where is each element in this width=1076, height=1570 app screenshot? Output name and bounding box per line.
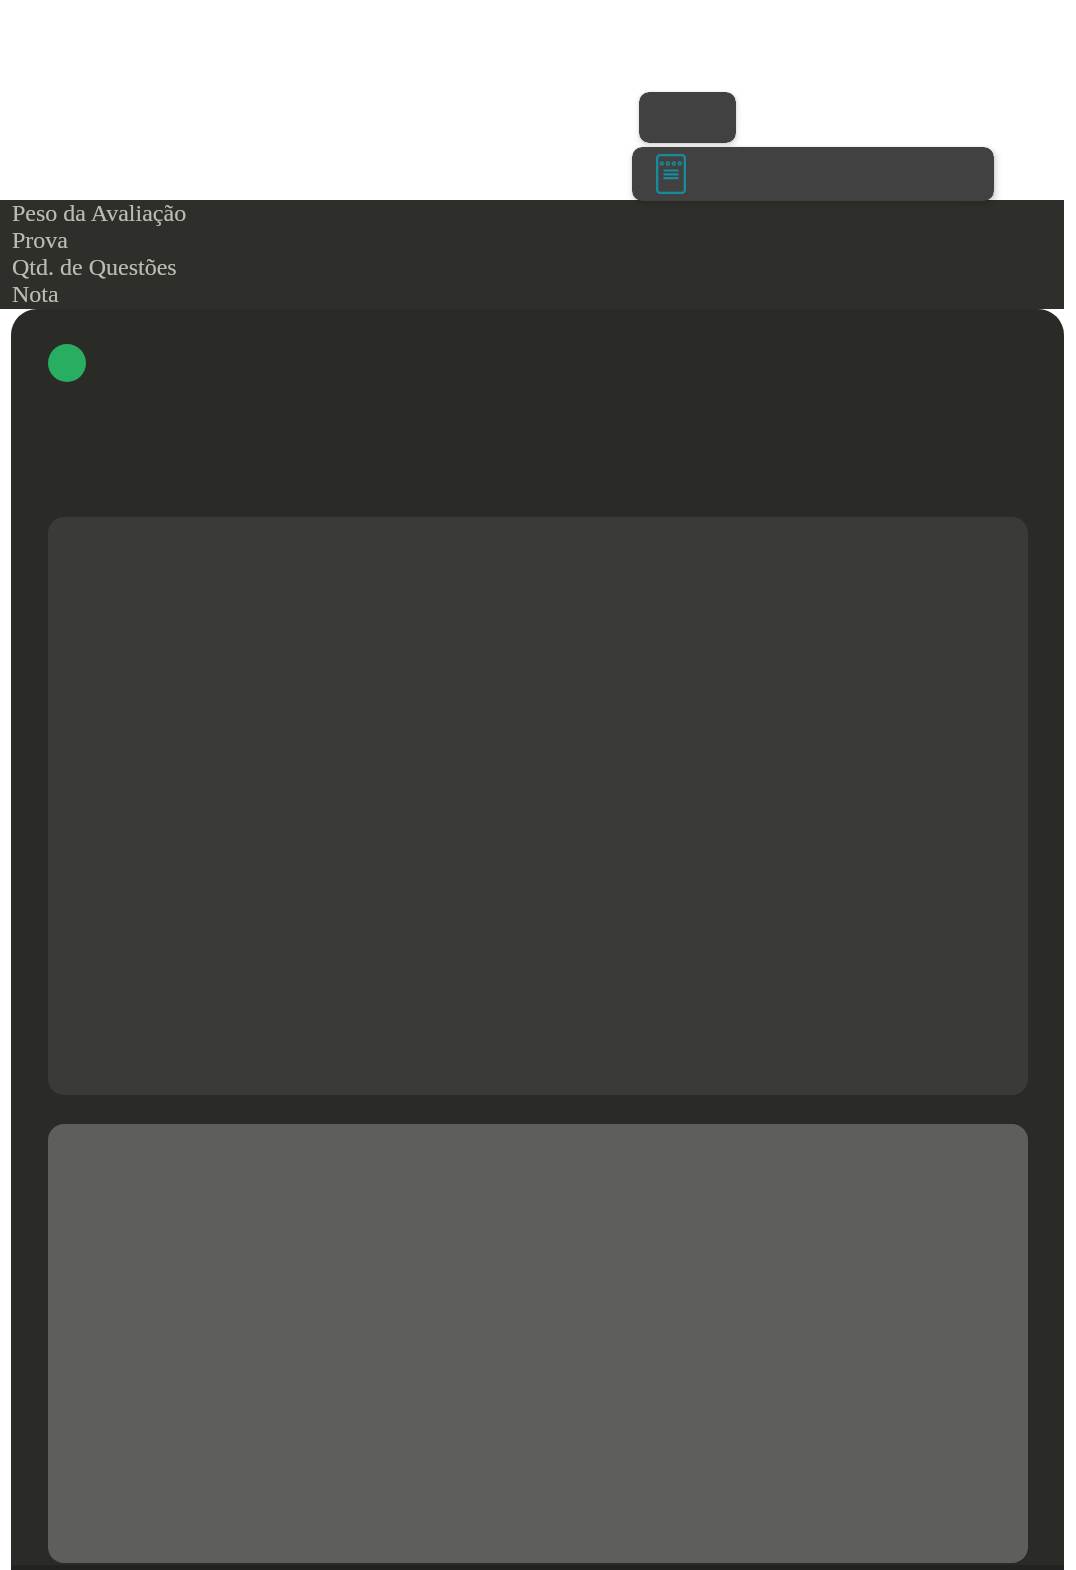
button[interactable] — [639, 92, 736, 143]
button[interactable]: Qtd. de Questões — [12, 254, 177, 281]
button[interactable]: Peso da Avaliação — [12, 200, 187, 227]
button[interactable] — [632, 147, 994, 201]
button[interactable]: Prova — [12, 227, 68, 254]
button[interactable] — [48, 344, 86, 382]
button[interactable]: Nota — [12, 281, 59, 308]
